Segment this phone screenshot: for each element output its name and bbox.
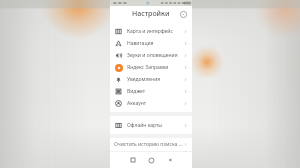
staticText: Очистить историю поиска и маршрутов <box>114 141 183 148</box>
button[interactable]: Карта и интерфейс <box>110 25 192 37</box>
button[interactable]: Очистить историю поиска и маршрутов <box>110 138 192 151</box>
staticText: Аккаунт <box>127 100 183 107</box>
staticText: Карта и интерфейс <box>127 28 183 35</box>
button[interactable]: Справка <box>178 9 188 19</box>
staticText: Виджет <box>127 88 183 95</box>
button[interactable]: Виджет <box>110 85 192 97</box>
staticText: Навигация <box>127 40 183 47</box>
staticText: Звуки и оповещения <box>127 52 183 59</box>
staticText: Офлайн карты <box>127 122 183 129</box>
staticText: Настройки <box>132 9 170 19</box>
button[interactable]: Аккаунт <box>110 97 192 109</box>
button[interactable]: Уведомления <box>110 73 192 85</box>
button[interactable]: Recent apps <box>127 154 139 166</box>
button[interactable]: Офлайн карты <box>110 119 192 131</box>
staticText: Яндекс Заправки <box>127 64 183 71</box>
button[interactable]: Звуки и оповещения <box>110 49 192 61</box>
staticText: Уведомления <box>127 76 183 83</box>
button[interactable]: Back <box>164 154 176 166</box>
button[interactable]: Яндекс Заправки <box>110 61 192 73</box>
button[interactable]: Навигация <box>110 37 192 49</box>
button[interactable]: Home <box>145 154 157 166</box>
